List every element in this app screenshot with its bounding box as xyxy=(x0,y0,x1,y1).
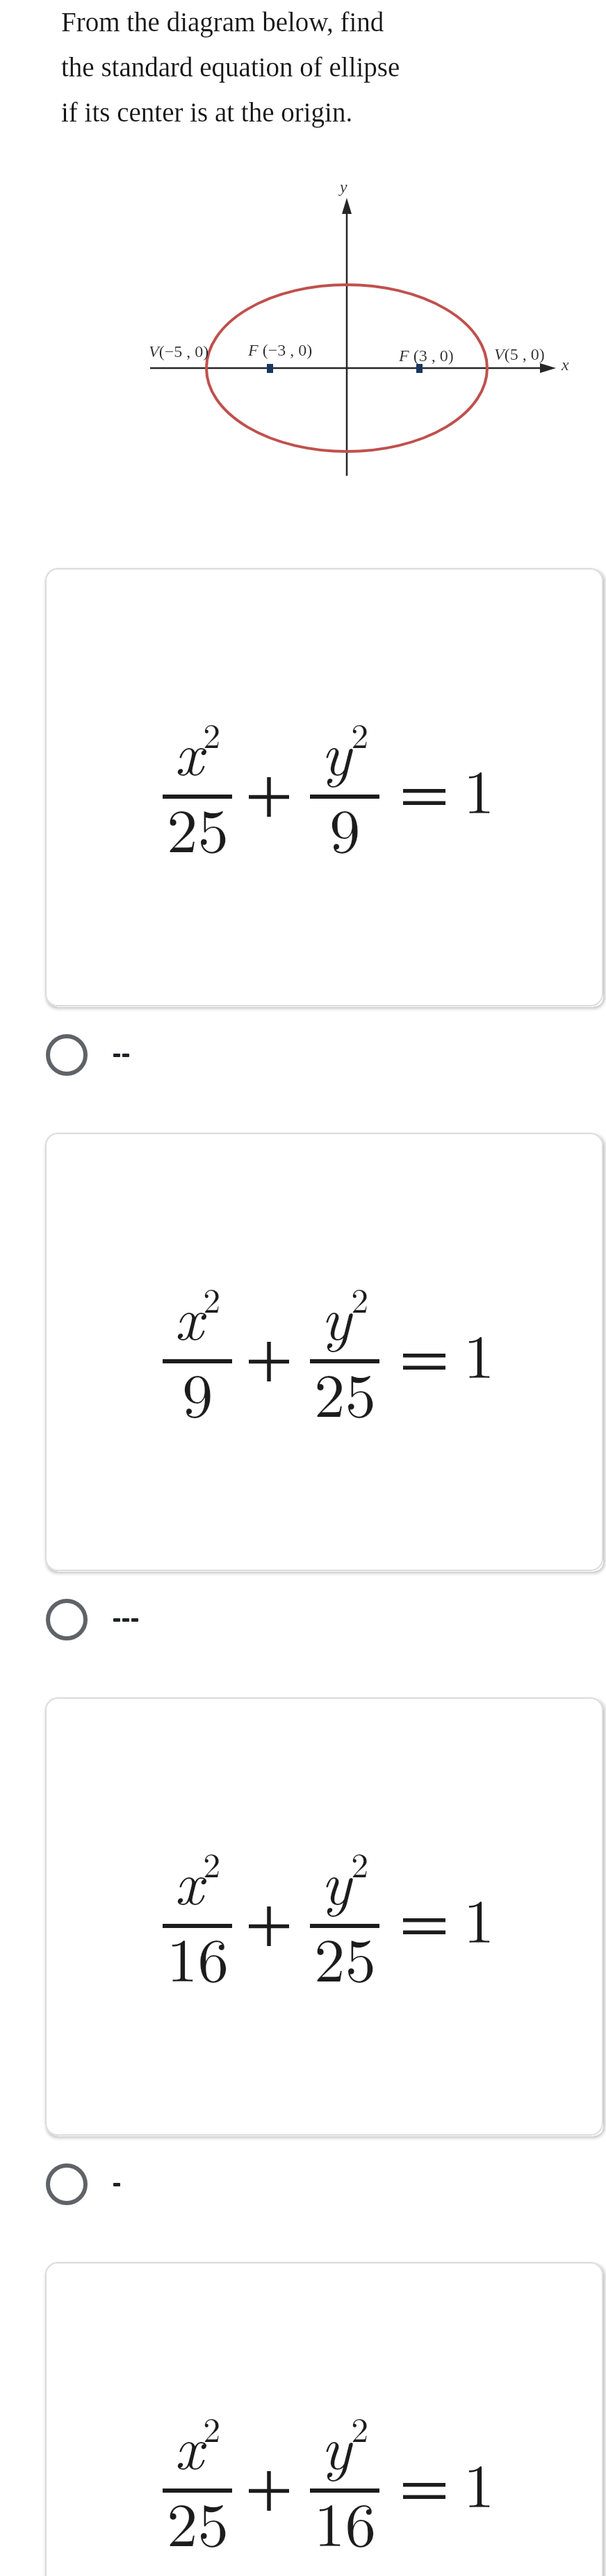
staticText: 25 xyxy=(167,783,229,870)
staticText: From the diagram below, find the standar… xyxy=(61,7,400,127)
staticText: x2 xyxy=(174,1835,221,1922)
staticText: 16 xyxy=(167,1912,229,2000)
staticText: y2 xyxy=(321,1270,369,1358)
button[interactable] xyxy=(46,2163,120,2205)
staticText: 9 xyxy=(182,1347,213,1435)
staticText: V(5 , 0) xyxy=(494,345,545,364)
staticText: F (−3 , 0) xyxy=(248,341,313,360)
staticText: 1 xyxy=(464,2438,495,2525)
staticText: 25 xyxy=(314,1347,376,1435)
staticText: 25 xyxy=(167,2477,229,2564)
button[interactable]: x2 xyxy=(45,1697,603,2136)
staticText: 1 xyxy=(464,1873,495,1961)
staticText: x2 xyxy=(174,1270,221,1358)
staticText: y2 xyxy=(321,706,369,793)
staticText: 16 xyxy=(314,2477,376,2564)
button[interactable] xyxy=(46,1034,129,1076)
staticText: x xyxy=(562,356,569,374)
staticText: x2 xyxy=(174,2400,221,2487)
button[interactable]: x2 xyxy=(45,2262,603,2576)
staticText: y2 xyxy=(321,1835,369,1922)
staticText: x2 xyxy=(174,706,221,793)
staticText: V(−5 , 0) xyxy=(149,342,209,361)
staticText: 1 xyxy=(464,744,495,831)
button[interactable]: x2 xyxy=(45,1133,603,1571)
staticText: 9 xyxy=(329,783,361,870)
staticText: F (3 , 0) xyxy=(399,347,454,365)
staticText: y xyxy=(340,178,347,197)
staticText: y2 xyxy=(321,2400,369,2487)
button[interactable] xyxy=(46,1599,138,1640)
button[interactable]: x2 xyxy=(45,568,603,1006)
staticText: 1 xyxy=(464,1308,495,1396)
staticText: 25 xyxy=(314,1912,376,2000)
